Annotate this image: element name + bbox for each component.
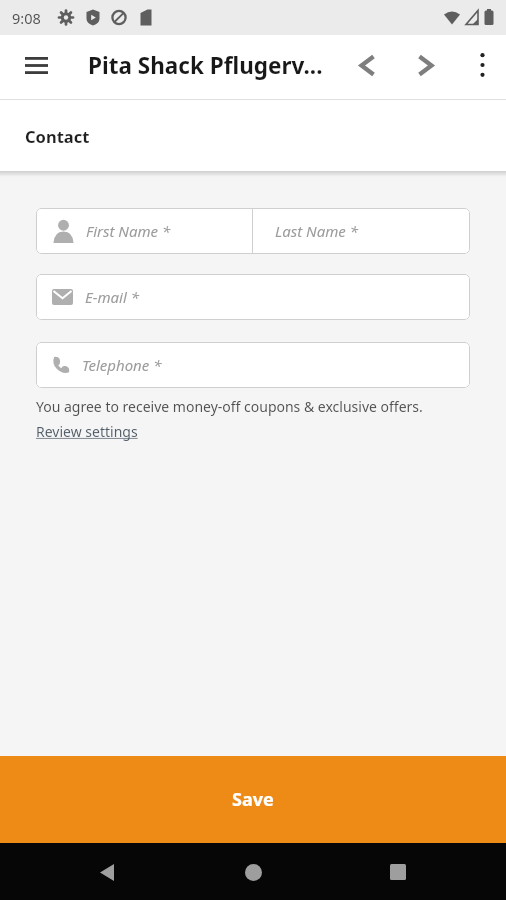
staticText: You agree to receive money-off coupons &…: [36, 397, 423, 416]
button[interactable]: [374, 848, 422, 896]
button[interactable]: First Name *: [36, 208, 252, 254]
button[interactable]: [459, 43, 506, 87]
button[interactable]: Last Name *: [253, 208, 470, 254]
button[interactable]: Save: [0, 756, 506, 843]
button[interactable]: [345, 43, 389, 87]
staticText: Save: [232, 787, 274, 812]
staticText: Telephone *: [82, 355, 162, 375]
button[interactable]: [83, 848, 131, 896]
staticText: Pita Shack Pflugerv...: [88, 50, 323, 81]
button[interactable]: E-mail *: [36, 274, 470, 320]
button[interactable]: Review settings: [36, 422, 138, 441]
staticText: First Name *: [86, 221, 171, 241]
button[interactable]: [403, 43, 447, 87]
button[interactable]: [229, 848, 277, 896]
staticText: Contact: [25, 125, 90, 147]
button[interactable]: [14, 43, 58, 87]
button[interactable]: Telephone *: [36, 342, 470, 388]
staticText: Last Name *: [275, 221, 358, 241]
staticText: E-mail *: [85, 287, 139, 307]
staticText: 9:08: [12, 8, 41, 28]
